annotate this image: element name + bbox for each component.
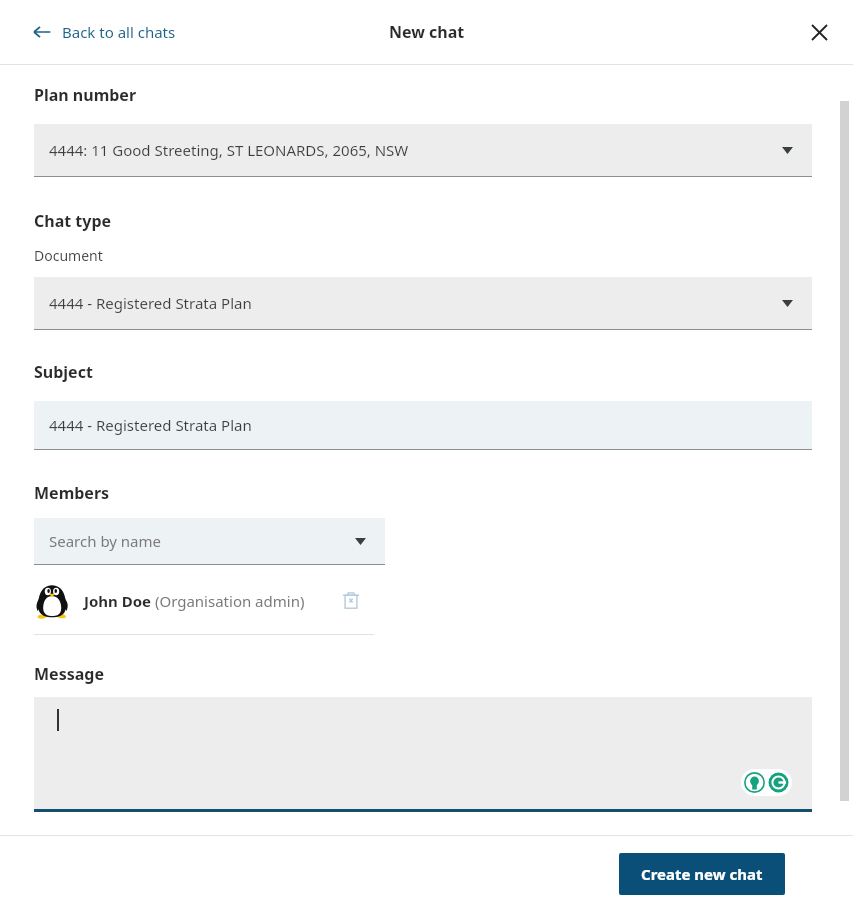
button[interactable]: Search by name (34, 518, 385, 565)
button[interactable]: 4444 - Registered Strata Plan (34, 277, 812, 330)
staticText: Chat type (34, 210, 112, 232)
staticText: 4444 - Registered Strata Plan (49, 293, 252, 313)
button[interactable]: 4444: 11 Good Streeting, ST LEONARDS, 20… (34, 124, 812, 177)
button[interactable]: Grammarly (34, 697, 812, 812)
staticText: Back to all chats (62, 22, 176, 42)
staticText: Members (34, 482, 110, 504)
staticText: Message (34, 663, 104, 685)
button[interactable]: Back to all chats (26, 16, 182, 48)
button[interactable]: John Doe (Organisation admin) (34, 578, 374, 624)
staticText: 4444: 11 Good Streeting, ST LEONARDS, 20… (49, 140, 409, 160)
staticText: New chat (389, 21, 465, 43)
button[interactable]: Create new chat (619, 853, 785, 895)
button[interactable]: Close (799, 12, 839, 52)
button[interactable]: 4444 - Registered Strata Plan (34, 401, 812, 450)
button[interactable]: Remove member (336, 586, 366, 616)
button[interactable]: Grammarly (744, 772, 789, 793)
staticText: Subject (34, 361, 93, 383)
staticText: 4444 - Registered Strata Plan (49, 415, 252, 435)
staticText: John Doe (Organisation admin) (84, 591, 305, 611)
staticText: Document (34, 246, 103, 265)
staticText: Search by name (49, 531, 162, 551)
staticText: Create new chat (641, 864, 763, 884)
staticText: Plan number (34, 84, 137, 106)
